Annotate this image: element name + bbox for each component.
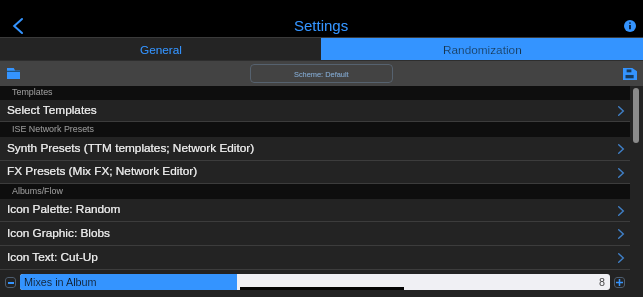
button[interactable]: Icon Text: Cut-Up [0,246,630,270]
button[interactable]: Open folder [1,61,26,86]
staticText: Albums/Flow [12,186,63,196]
button[interactable]: Decrease [5,277,16,288]
staticText: Icon Palette: Random [7,202,121,215]
staticText: Select Templates [7,103,97,116]
button[interactable]: Icon Palette: Random [0,199,630,222]
button[interactable]: Back [4,15,31,37]
button[interactable]: Save [617,61,642,86]
staticText: ISE Network Presets [12,124,95,134]
staticText: 8 [599,276,606,288]
button[interactable]: General [0,38,321,60]
button[interactable]: Randomization [321,38,643,60]
staticText: General [140,43,182,56]
staticText: FX Presets (Mix FX; Network Editor) [7,164,198,177]
button[interactable]: Info [619,15,641,37]
button[interactable]: Select Templates [0,100,630,122]
staticText: Settings [294,17,349,34]
staticText: Icon Text: Cut-Up [7,250,98,263]
button[interactable]: Mixes in Album [20,274,610,290]
staticText: Synth Presets (TTM templates; Network Ed… [7,141,255,154]
staticText: Mixes in Album [24,276,97,288]
staticText: Randomization [443,43,522,56]
staticText: Icon Graphic: Blobs [7,226,110,239]
staticText: Scheme: Default [294,70,349,78]
button[interactable]: FX Presets (Mix FX; Network Editor) [0,161,630,184]
button[interactable]: Scheme: Default [250,64,393,83]
button[interactable]: Synth Presets (TTM templates; Network Ed… [0,137,630,161]
button[interactable]: Icon Graphic: Blobs [0,222,630,246]
button[interactable]: Increase [614,277,625,288]
staticText: Templates [12,87,53,97]
